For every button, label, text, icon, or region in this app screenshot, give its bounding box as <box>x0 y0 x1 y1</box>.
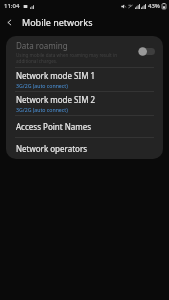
staticText: Network mode SIM 1 <box>16 70 96 81</box>
button[interactable]: Network mode SIM 1 <box>6 68 163 91</box>
staticText: 3G/2G (auto connect) <box>16 82 68 89</box>
button[interactable]: Data roaming <box>6 36 163 67</box>
button[interactable]: Network mode SIM 2 <box>6 92 163 115</box>
staticText: 43% <box>148 2 160 10</box>
staticText: Using mobile data when roaming may resul… <box>16 52 134 64</box>
staticText: Data roaming <box>16 40 68 51</box>
button[interactable]: Access Point Names <box>6 116 163 137</box>
button[interactable]: Data roaming toggle <box>138 47 155 56</box>
staticText: Mobile networks <box>22 16 93 28</box>
staticText: Network mode SIM 2 <box>16 94 96 105</box>
staticText: 3G/2G (auto connect) <box>16 106 68 113</box>
button[interactable]: Network operators <box>6 138 163 159</box>
button[interactable]: Back <box>0 13 18 31</box>
staticText: Access Point Names <box>16 121 92 132</box>
staticText: Network operators <box>16 143 88 154</box>
staticText: 11:04 <box>4 2 20 10</box>
